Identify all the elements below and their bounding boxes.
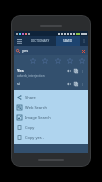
button[interactable]: Web Search (14, 102, 88, 112)
button[interactable]: Copy (72, 67, 79, 74)
staticText: Web Search (25, 105, 48, 110)
button[interactable]: Speak (65, 67, 72, 74)
button[interactable]: SAVED (56, 36, 80, 46)
button[interactable]: Copy yes - (14, 132, 88, 142)
staticText: Copy (25, 125, 35, 130)
button[interactable]: Speak (65, 89, 72, 96)
button[interactable]: Copy (72, 89, 79, 96)
button[interactable]: Menu (14, 36, 25, 46)
staticText: si (17, 81, 20, 86)
button[interactable]: Yes (14, 66, 88, 79)
button[interactable]: Rate star (40, 56, 49, 65)
staticText: SAVED (63, 39, 73, 43)
button[interactable]: More (79, 68, 85, 74)
staticText: Yes (17, 68, 24, 73)
staticText: adverb, interjection (17, 74, 45, 78)
button[interactable]: Copy (14, 122, 88, 132)
button[interactable]: Speak (65, 80, 72, 87)
button[interactable]: DICTIONARY (25, 36, 56, 46)
button[interactable]: Rate star (53, 56, 62, 65)
button[interactable]: Rate star (28, 56, 37, 65)
staticText: Image Search (25, 115, 51, 120)
button[interactable]: Copy (72, 80, 79, 87)
button[interactable]: si (14, 88, 88, 97)
button[interactable]: Rate star (65, 56, 74, 65)
staticText: DICTIONARY (31, 39, 50, 43)
button[interactable]: Image Search (14, 112, 88, 122)
staticText: yes (22, 48, 29, 53)
button[interactable]: Rate star (77, 56, 86, 65)
button[interactable]: si (14, 79, 88, 88)
button[interactable]: yes (14, 46, 88, 55)
button[interactable]: Share (14, 92, 88, 102)
staticText: Share (25, 95, 36, 100)
button[interactable]: More (79, 81, 85, 87)
button[interactable]: Clear (80, 48, 86, 54)
staticText: Copy yes - (25, 135, 45, 140)
button[interactable]: si (14, 97, 88, 106)
button[interactable]: More options (80, 36, 88, 46)
